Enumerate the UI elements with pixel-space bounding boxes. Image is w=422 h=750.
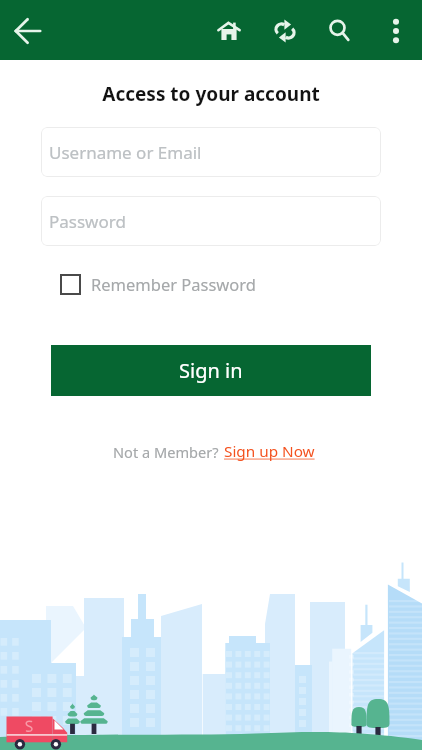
button[interactable]: Home — [207, 9, 251, 53]
button[interactable]: Password — [41, 196, 381, 246]
button[interactable]: More options — [374, 9, 418, 53]
button[interactable]: Username or Email — [41, 127, 381, 177]
staticText: Username or Email — [49, 141, 202, 164]
staticText: Password — [49, 210, 126, 233]
staticText: Access to your account — [0, 81, 422, 107]
button[interactable]: Refresh — [263, 9, 307, 53]
button[interactable]: Back — [6, 9, 50, 53]
button[interactable]: Remember Password — [60, 273, 256, 295]
staticText: Sign in — [179, 357, 243, 384]
button[interactable]: Search — [318, 9, 362, 53]
staticText: Remember Password — [91, 273, 256, 295]
staticText: Not a Member? — [113, 442, 219, 462]
button[interactable]: Sign in — [51, 345, 371, 396]
button[interactable]: Sign up Now — [224, 441, 315, 462]
